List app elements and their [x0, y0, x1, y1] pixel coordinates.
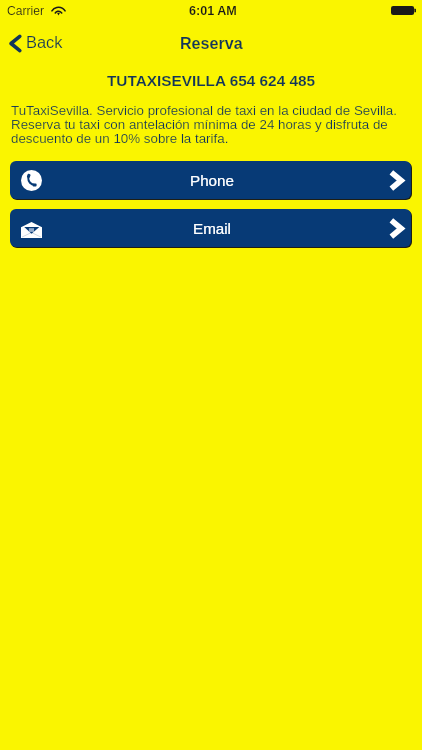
- button[interactable]: Phone: [10, 161, 411, 199]
- other: Email TuTaxiSevilla: [21, 220, 42, 236]
- staticText: TuTaxiSevilla. Servicio profesional de t…: [11, 103, 404, 146]
- other: Back: [9, 34, 21, 53]
- staticText: Email: [193, 220, 231, 237]
- button[interactable]: Back: [0, 28, 73, 55]
- other: Call TuTaxiSevilla: [21, 170, 42, 191]
- other: Open Email: [388, 217, 404, 240]
- staticText: Back: [26, 33, 63, 51]
- staticText: 6:01 AM: [189, 4, 237, 18]
- staticText: Phone: [190, 172, 234, 189]
- staticText: TUTAXISEVILLA 654 624 485: [0, 72, 422, 89]
- other: Open Phone: [388, 169, 404, 192]
- staticText: Carrier: [7, 4, 44, 18]
- staticText: Reserva: [180, 34, 243, 52]
- button[interactable]: Email: [10, 209, 411, 247]
